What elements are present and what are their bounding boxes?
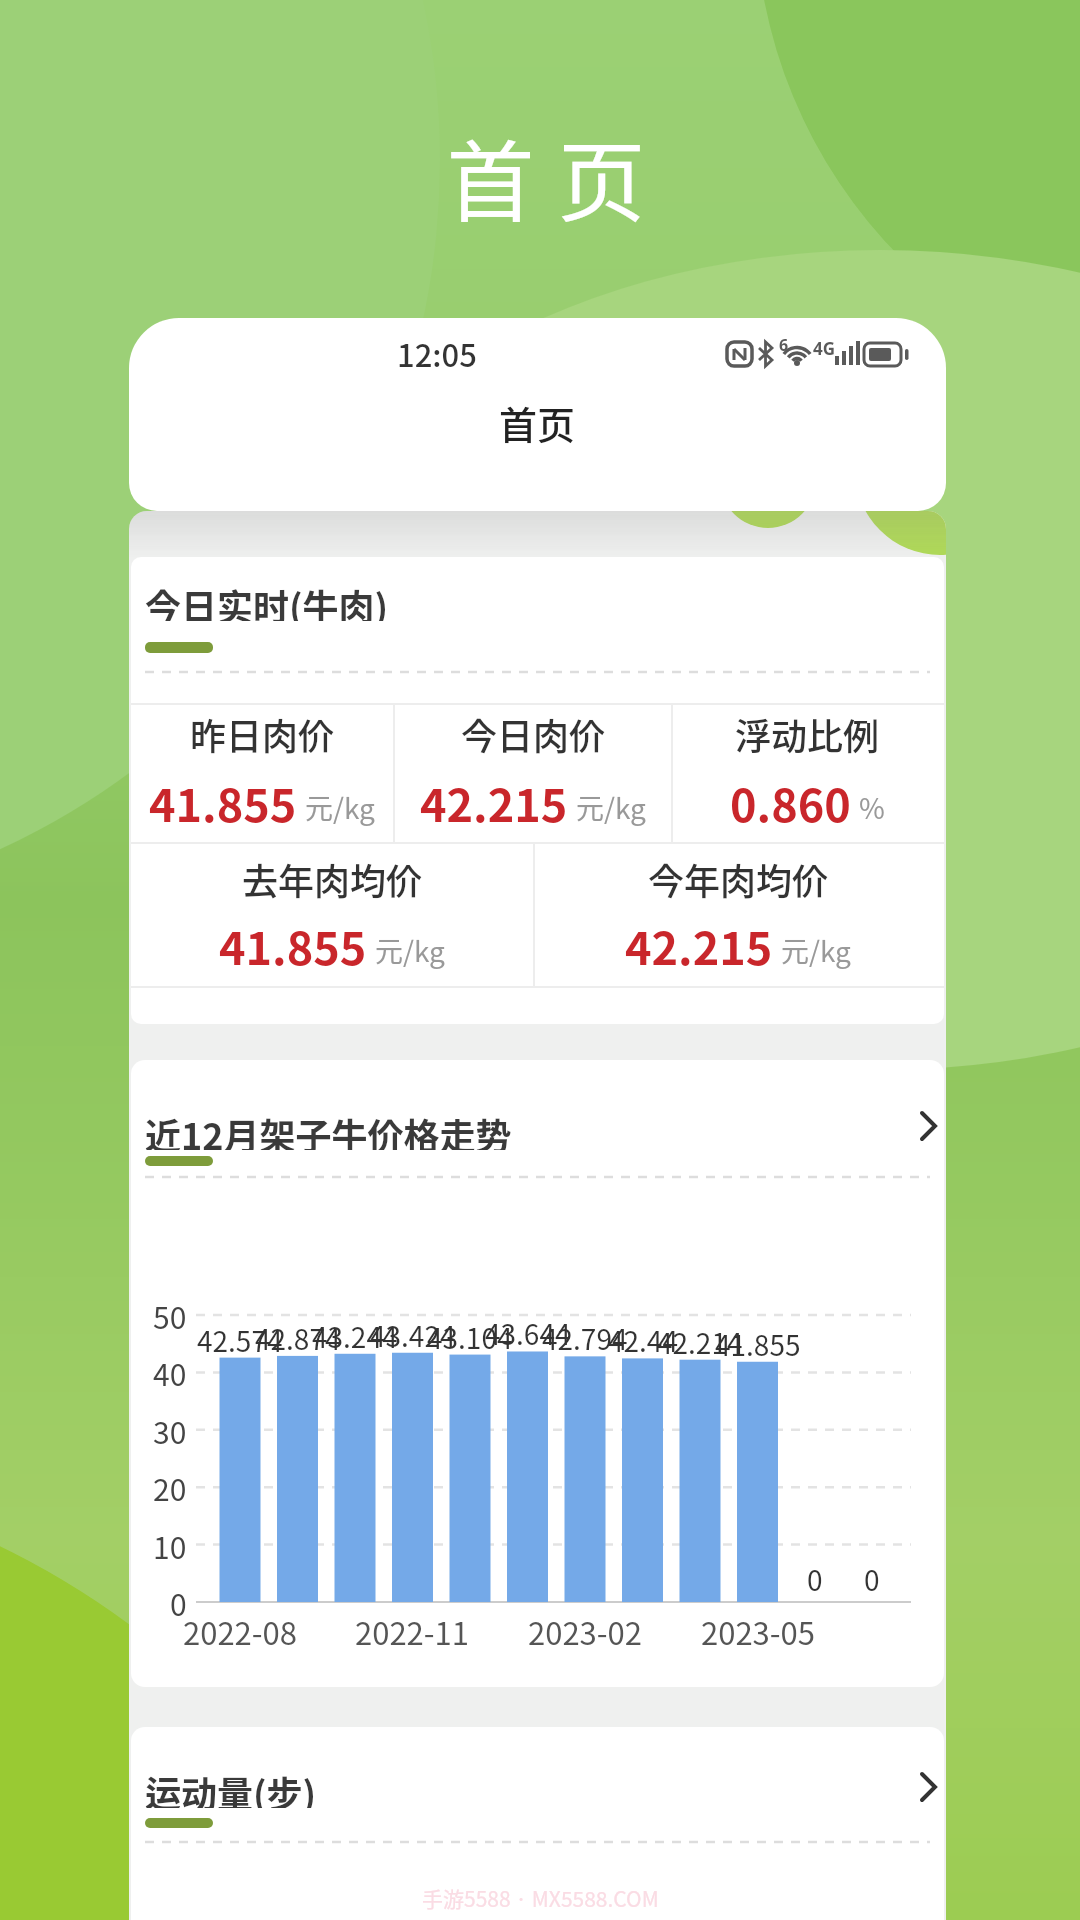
staticText: 10 — [153, 1524, 187, 1567]
staticText: 20 — [153, 1466, 187, 1509]
staticText: 42.574 — [197, 1320, 283, 1361]
staticText: 运动量(步) — [145, 1766, 317, 1808]
staticText: 43.424 — [370, 1315, 456, 1356]
staticText: 42.794 — [542, 1318, 628, 1359]
staticText: 0 — [864, 1559, 880, 1600]
staticText: 2022-08 — [183, 1609, 297, 1654]
staticText: 手游5588 · MX5588.COM — [422, 1883, 659, 1913]
staticText: 40 — [153, 1351, 187, 1394]
staticText: 42.214 — [657, 1322, 743, 1363]
staticText: 50 — [153, 1294, 187, 1337]
staticText: 元/kg — [576, 787, 646, 828]
staticText: 42.215 — [420, 770, 568, 835]
staticText: 浮动比例 — [735, 708, 880, 760]
staticText: 0.860 — [730, 770, 851, 835]
staticText: 41.855 — [715, 1324, 801, 1365]
staticText: 0 — [170, 1581, 187, 1624]
staticText: % — [859, 787, 885, 828]
staticText: 6 — [779, 334, 789, 356]
button[interactable]: 近12月架子牛价格走势 — [131, 1060, 944, 1687]
staticText: 页 — [557, 112, 646, 239]
staticText: 2023-02 — [528, 1609, 642, 1654]
staticText: 30 — [153, 1409, 187, 1452]
staticText: 今日肉价 — [461, 708, 606, 760]
staticText: 首页 — [499, 395, 576, 450]
staticText: 41.855 — [149, 770, 297, 835]
button[interactable]: 运动量(步) — [131, 1727, 944, 1920]
staticText: 2022-11 — [355, 1609, 469, 1654]
staticText: 43.244 — [312, 1316, 398, 1357]
staticText: 近12月架子牛价格走势 — [145, 1108, 512, 1150]
staticText: 0 — [807, 1559, 823, 1600]
staticText: 元/kg — [781, 930, 851, 971]
staticText: 去年肉均价 — [242, 853, 423, 905]
staticText: 今年肉均价 — [648, 853, 829, 905]
staticText: 4G — [813, 337, 836, 360]
staticText: 今日实时(牛肉) — [145, 579, 389, 621]
staticText: 42.874 — [255, 1318, 341, 1359]
staticText: 2023-05 — [701, 1609, 815, 1654]
staticText: 首 — [446, 112, 535, 239]
staticText: 41.855 — [219, 913, 367, 978]
staticText: 元/kg — [305, 787, 375, 828]
staticText: 42.44 — [608, 1320, 678, 1361]
staticText: 12:05 — [397, 331, 477, 376]
staticText: 43.644 — [485, 1313, 571, 1354]
staticText: 元/kg — [375, 930, 445, 971]
staticText: 43.104 — [427, 1317, 513, 1358]
staticText: 昨日肉价 — [190, 708, 335, 760]
staticText: 42.215 — [625, 913, 773, 978]
